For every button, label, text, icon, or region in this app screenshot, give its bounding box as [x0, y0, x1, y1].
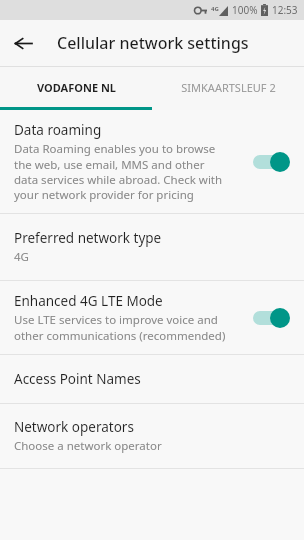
staticText: Cellular network settings [57, 32, 249, 54]
staticText: 4G [14, 249, 29, 265]
button[interactable]: Enhanced 4G LTE Mode [0, 281, 304, 354]
button[interactable]: Data roaming [0, 110, 304, 213]
staticText: Choose a network operator [14, 438, 162, 454]
button[interactable]: Network operators [0, 404, 304, 468]
button[interactable]: SIMKAARTSLEUF 2 [152, 67, 304, 107]
staticText: Data roaming [14, 121, 102, 139]
staticText: Use LTE services to improve voice and ot… [14, 312, 230, 343]
staticText: VODAFONE NL [37, 80, 116, 95]
staticText: Network operators [14, 418, 134, 436]
button[interactable]: Access Point Names [0, 355, 304, 403]
staticText: Data Roaming enables you to browse the w… [14, 141, 230, 202]
staticText: 12:53 [272, 3, 298, 17]
staticText: Preferred network type [14, 229, 162, 247]
button[interactable]: VODAFONE NL [0, 67, 152, 107]
button[interactable]: Toggle [250, 149, 294, 175]
staticText: SIMKAARTSLEUF 2 [181, 80, 276, 95]
staticText: 4G [211, 5, 219, 13]
staticText: 100% [232, 3, 258, 17]
button[interactable]: Toggle [250, 305, 294, 331]
staticText: Access Point Names [14, 370, 141, 388]
button[interactable]: Back [8, 28, 38, 58]
staticText: Enhanced 4G LTE Mode [14, 292, 163, 310]
button[interactable]: Preferred network type [0, 214, 304, 280]
